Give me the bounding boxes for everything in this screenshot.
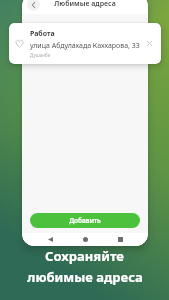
staticText: Работа — [30, 29, 55, 39]
button[interactable]: Back — [27, 0, 40, 11]
button[interactable]: Добавить — [30, 213, 140, 228]
button[interactable]: Home — [78, 233, 92, 246]
button[interactable]: Recents — [113, 233, 127, 246]
staticText: Добавить — [69, 216, 101, 225]
staticText: Душанбе — [30, 52, 51, 58]
staticText: Сохраняйте — [45, 247, 124, 265]
staticText: Любимые адреса — [54, 0, 116, 9]
button[interactable]: Remove — [144, 38, 155, 49]
button[interactable]: Back — [43, 233, 57, 246]
button[interactable]: Работа — [9, 23, 161, 64]
staticText: улица Абдулахада Каххарова, 33 — [30, 41, 140, 51]
staticText: любимые адреса — [27, 268, 143, 286]
